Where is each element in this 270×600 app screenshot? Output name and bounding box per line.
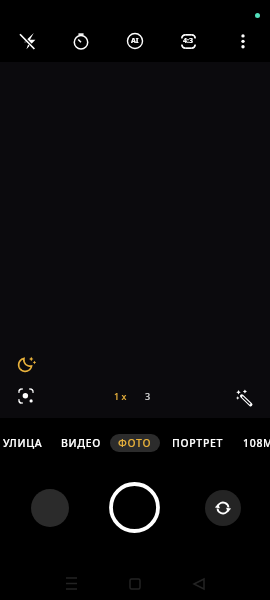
button[interactable]: Night mode (14, 351, 39, 376)
button[interactable]: Recent apps (54, 566, 89, 600)
button[interactable]: Home (117, 566, 152, 600)
button[interactable]: ПОРТРЕТ (172, 434, 224, 452)
button[interactable]: ВИДЕО (61, 434, 102, 452)
button[interactable]: УЛИЦА (3, 434, 43, 452)
staticText: AI (131, 36, 139, 46)
button[interactable]: AI scene detection (121, 27, 149, 55)
button[interactable]: Back (181, 566, 216, 600)
staticText: ФОТО (118, 436, 152, 450)
staticText: 108M (243, 436, 270, 450)
staticText: ПОРТРЕТ (172, 436, 224, 450)
button[interactable]: Take photo (109, 482, 160, 533)
button[interactable]: Timer (67, 27, 95, 55)
button[interactable]: 1 x (108, 385, 133, 407)
button[interactable]: 108M (243, 434, 270, 452)
button[interactable]: Flash off (14, 27, 42, 55)
button[interactable]: Macro mode (14, 384, 38, 408)
staticText: ВИДЕО (61, 436, 102, 450)
button[interactable]: Gallery (31, 489, 69, 527)
button[interactable]: Filters (231, 384, 255, 408)
staticText: 1 x (114, 390, 127, 402)
staticText: 3 (145, 390, 151, 402)
button[interactable]: ФОТО (110, 434, 160, 452)
staticText: УЛИЦА (3, 436, 43, 450)
button[interactable]: Aspect ratio 4 to 3 (174, 27, 202, 55)
staticText: 4:3 (183, 36, 193, 46)
button[interactable]: 3 (139, 385, 157, 407)
button[interactable]: Switch camera (205, 490, 241, 526)
button[interactable]: More settings (229, 27, 257, 55)
